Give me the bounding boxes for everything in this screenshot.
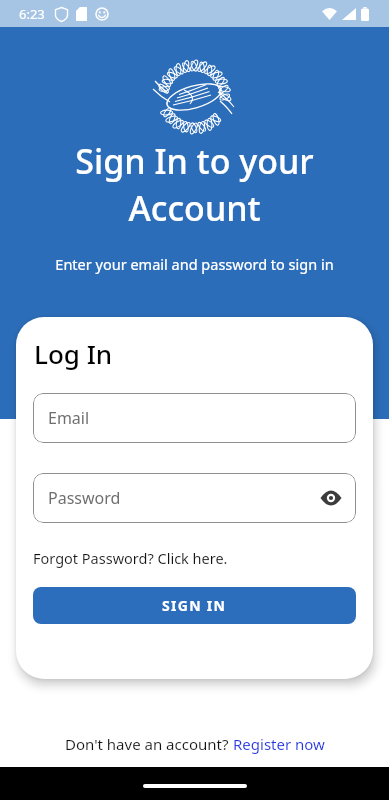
button[interactable]: SIGN IN bbox=[33, 587, 356, 624]
staticText: Email bbox=[48, 407, 90, 429]
staticText: Log In bbox=[34, 336, 113, 371]
staticText: 6:23 bbox=[19, 5, 45, 23]
staticText: Sign In to your Account bbox=[0, 138, 389, 231]
staticText: Enter your email and password to sign in bbox=[0, 254, 389, 274]
button[interactable]: Register now bbox=[233, 734, 325, 754]
button[interactable]: Forgot Password? Click here. bbox=[33, 548, 228, 568]
staticText: Don't have an account? bbox=[65, 734, 233, 754]
staticText: SIGN IN bbox=[162, 596, 227, 615]
staticText: Password bbox=[48, 487, 121, 509]
button[interactable] bbox=[318, 485, 344, 511]
button[interactable]: Password bbox=[33, 473, 356, 523]
button[interactable]: Email bbox=[33, 393, 356, 443]
